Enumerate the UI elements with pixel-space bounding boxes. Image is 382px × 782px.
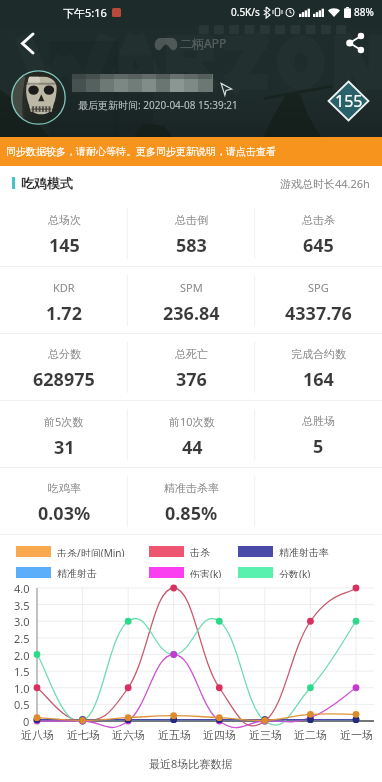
staticText: 236.84 <box>163 301 220 326</box>
staticText: 628975 <box>33 367 95 392</box>
button[interactable]: 总击杀 <box>255 200 382 267</box>
staticText: 0.03% <box>38 501 91 526</box>
staticText: 0.85% <box>165 501 218 526</box>
button[interactable]: 完成合约数 <box>255 334 382 401</box>
staticText: 精准击杀率 <box>164 481 219 495</box>
staticText: 吃鸡模式 <box>21 175 73 191</box>
staticText: 近二场 <box>294 728 327 742</box>
button[interactable]: 总分数 <box>0 334 128 401</box>
staticText: 164 <box>303 367 334 392</box>
staticText: 最后更新时间: 2020-04-08 15:39:21 <box>78 98 238 112</box>
staticText: 44 <box>182 435 203 460</box>
staticText: 近六场 <box>112 728 145 742</box>
staticText: 分数(k) <box>279 567 311 578</box>
staticText: 376 <box>176 367 207 392</box>
staticText: 31 <box>54 435 75 460</box>
button[interactable]: SPM <box>128 267 255 334</box>
staticText: 最近8场比赛数据 <box>149 756 233 771</box>
button[interactable]: 总场次 <box>0 200 128 267</box>
staticText: 前5次数 <box>44 414 84 429</box>
staticText: 近一场 <box>340 728 373 742</box>
button[interactable]: 总死亡 <box>128 334 255 401</box>
button[interactable]: 总胜场 <box>255 401 382 468</box>
staticText: 近五场 <box>158 728 191 742</box>
button[interactable]: Level 155 <box>327 80 370 122</box>
button[interactable]: 前5次数 <box>0 401 128 468</box>
button[interactable]: SPG <box>255 267 382 334</box>
button[interactable]: KDR <box>0 267 128 334</box>
staticText: 0 <box>23 714 30 728</box>
staticText: 同步数据较多，请耐心等待。更多同步更新说明，请点击查看 <box>6 145 276 158</box>
staticText: 645 <box>303 233 334 258</box>
staticText: SPM <box>180 280 203 295</box>
staticText: 精准射击 <box>57 567 97 578</box>
staticText: 近四场 <box>203 728 236 742</box>
button[interactable]: Back <box>0 24 54 62</box>
button[interactable] <box>11 70 66 125</box>
staticText: 游戏总时长44.26h <box>280 176 370 191</box>
staticText: 2.5 <box>14 631 30 645</box>
staticText: 二柄APP <box>180 35 227 51</box>
staticText: 精准射击率 <box>279 546 329 557</box>
staticText: 完成合约数 <box>291 347 346 361</box>
staticText: 2.0 <box>14 648 30 662</box>
staticText: 0.5K/s <box>231 5 260 19</box>
button[interactable]: 前10次数 <box>128 401 255 468</box>
staticText: 3.5 <box>14 598 30 612</box>
button[interactable]: Share <box>328 24 382 62</box>
button[interactable]: 精准击杀率 <box>128 468 255 535</box>
staticText: 总击倒 <box>175 213 208 227</box>
staticText: 总死亡 <box>175 347 208 361</box>
staticText: 1.0 <box>14 681 30 695</box>
staticText: 1.5 <box>14 664 30 678</box>
button[interactable]: 吃鸡率 <box>0 468 128 535</box>
staticText: KDR <box>53 280 75 295</box>
button[interactable]: 同步数据较多，请耐心等待。更多同步更新说明，请点击查看 <box>0 137 382 166</box>
staticText: 1.72 <box>46 301 82 326</box>
staticText: 3.0 <box>14 614 30 628</box>
staticText: 145 <box>49 233 80 258</box>
staticText: 总分数 <box>48 347 81 361</box>
staticText: 4337.76 <box>285 301 352 326</box>
staticText: 0.5 <box>14 697 30 711</box>
staticText: 4.0 <box>14 581 30 595</box>
staticText: SPG <box>308 280 329 295</box>
staticText: 近七场 <box>67 728 100 742</box>
staticText: 总击杀 <box>302 213 335 227</box>
staticText: 吃鸡率 <box>48 481 81 495</box>
staticText: 155 <box>335 90 363 112</box>
staticText: 近八场 <box>21 728 54 742</box>
button[interactable]: 总击倒 <box>128 200 255 267</box>
staticText: 击杀 <box>190 546 210 557</box>
staticText: 下午5:16 <box>63 5 107 20</box>
staticText: 总胜场 <box>302 414 335 428</box>
staticText: 总场次 <box>48 213 81 227</box>
staticText: 击杀/时间(Min) <box>57 546 125 557</box>
staticText: 88% <box>354 5 374 19</box>
staticText: 前10次数 <box>169 414 215 429</box>
staticText: 近三场 <box>249 728 282 742</box>
staticText: 583 <box>176 233 207 258</box>
staticText: 5 <box>313 434 324 459</box>
staticText: 伤害(k) <box>190 567 222 578</box>
